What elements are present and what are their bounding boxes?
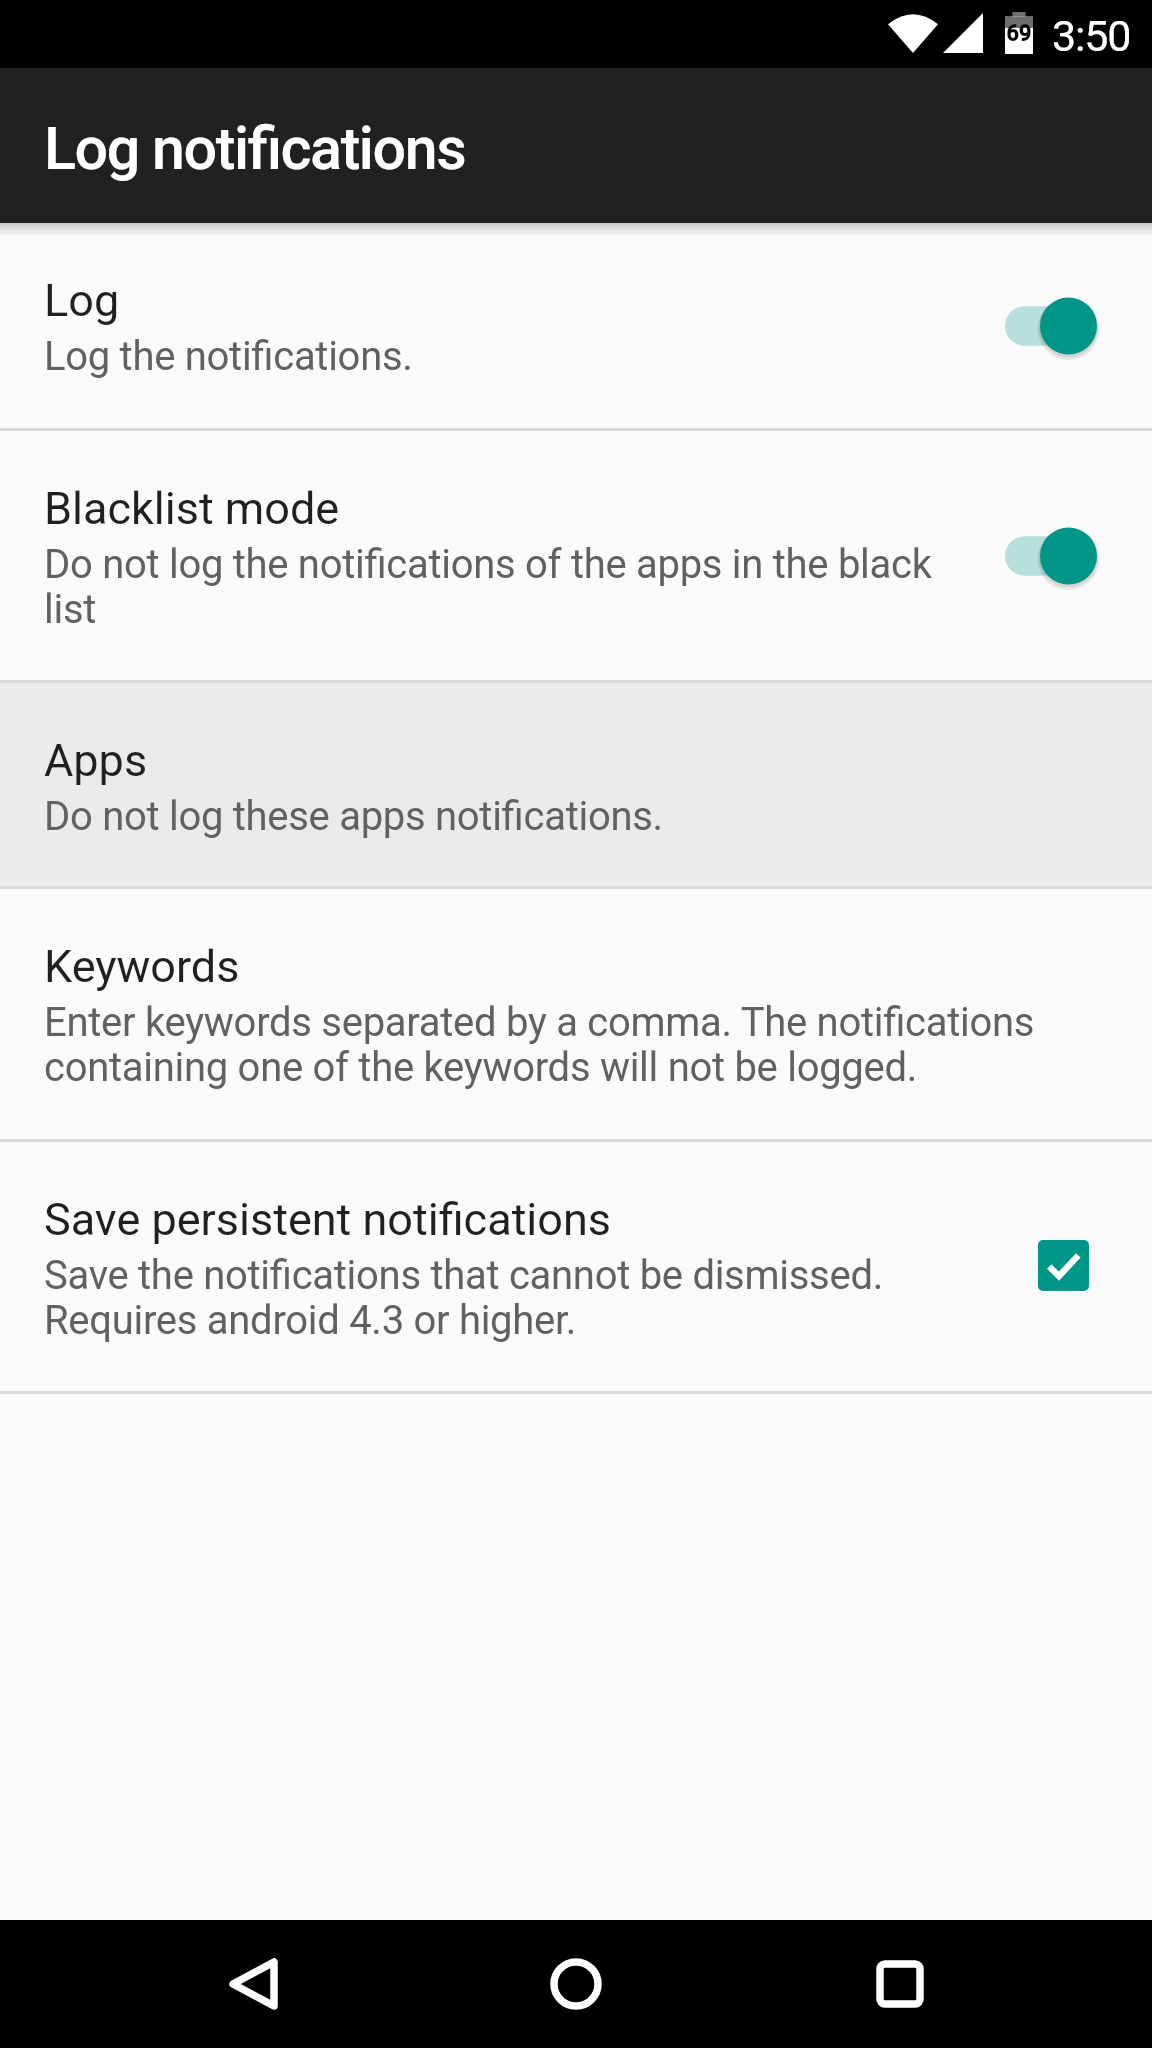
button[interactable]: Apps [0,683,1152,886]
staticText: Keywords [44,941,240,993]
staticText: Do not log these apps notifications. [44,794,663,839]
staticText: 3:50 [1052,11,1131,61]
button[interactable]: Recent apps [840,1924,960,2044]
button[interactable]: Save persistent notifications checkbox, … [1027,1229,1099,1301]
button[interactable]: Back [193,1924,313,2044]
staticText: Log notifications [44,114,466,183]
staticText: Save persistent notifications [44,1194,612,1246]
button[interactable]: Keywords [0,889,1152,1139]
button[interactable]: Log switch, on [1005,290,1127,362]
staticText: Log the notifications. [44,334,413,379]
staticText: Enter keywords separated by a comma. The… [44,1000,1100,1090]
button[interactable]: Home [516,1924,636,2044]
staticText: Save the notifications that cannot be di… [44,1253,1004,1343]
staticText: Blacklist mode [44,483,340,535]
staticText: Apps [44,735,148,787]
staticText: Log [44,275,120,327]
button[interactable]: Save persistent notifications [0,1142,1152,1391]
button[interactable]: Blacklist mode [0,431,1152,680]
staticText: 69 [1006,21,1032,47]
staticText: Do not log the notifications of the apps… [44,542,974,632]
button[interactable]: Log [0,223,1152,428]
button[interactable]: Blacklist mode switch, on [1005,520,1127,592]
